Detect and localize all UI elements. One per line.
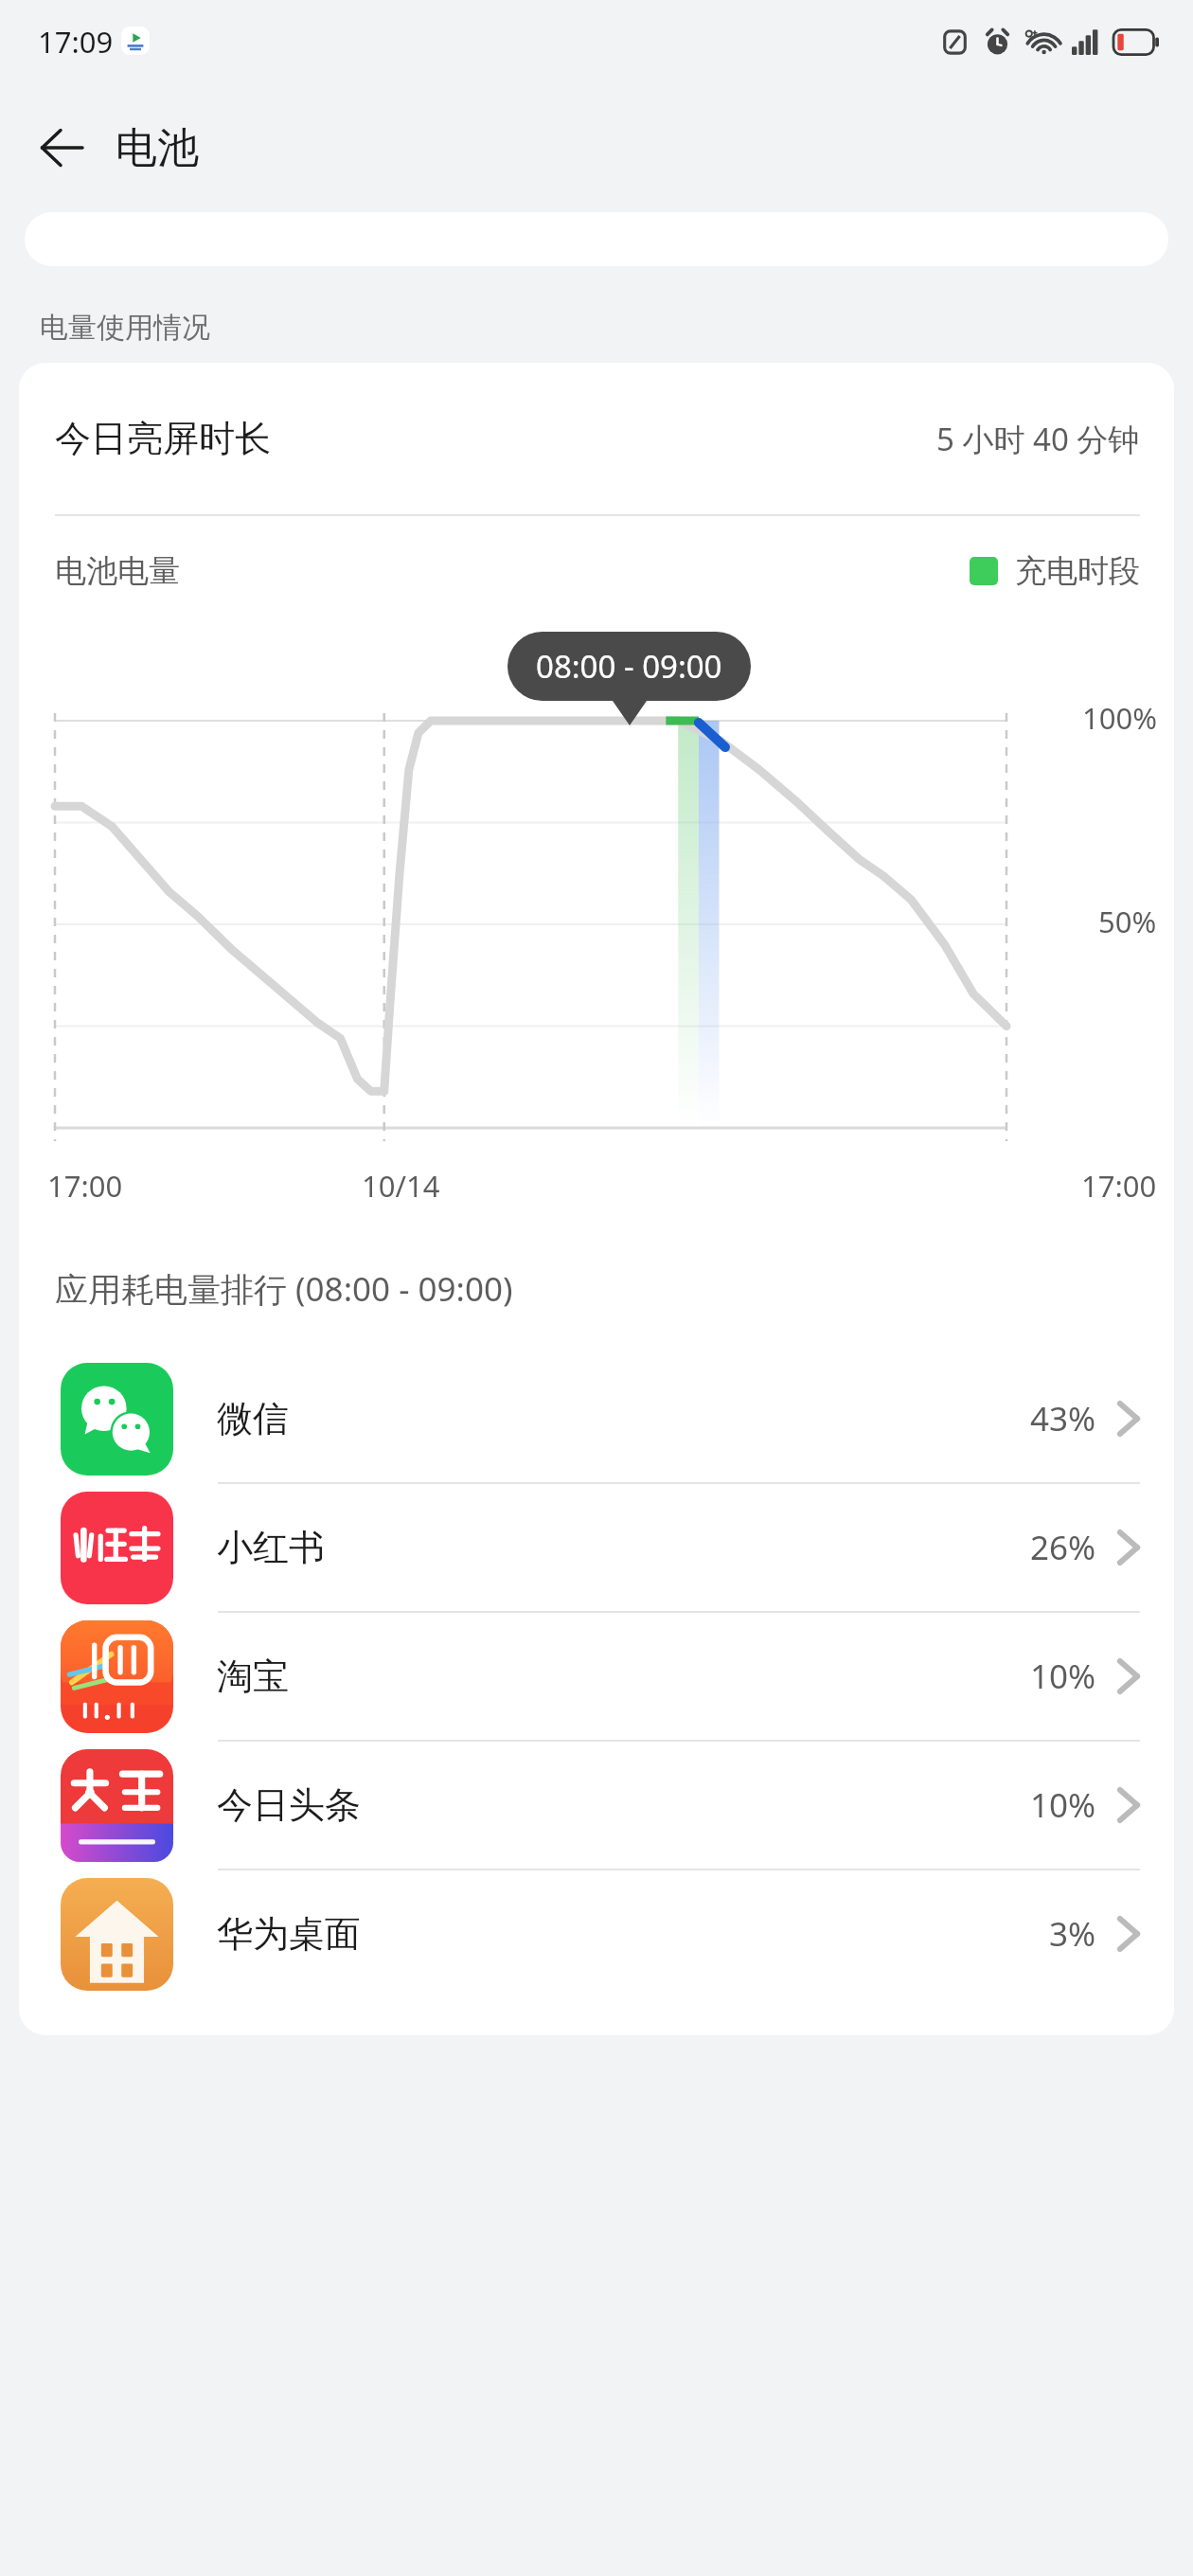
- staticText: 17:00: [47, 1166, 123, 1206]
- staticText: 17:09: [38, 22, 114, 62]
- staticText: 10%: [1030, 1782, 1096, 1828]
- staticText: 26%: [1030, 1525, 1096, 1570]
- staticText: 充电时段: [1015, 551, 1140, 591]
- staticText: 应用耗电量排行 (08:00 - 09:00): [55, 1266, 513, 1312]
- button[interactable]: 08:00 - 09:00: [536, 645, 722, 688]
- staticText: 10%: [1030, 1654, 1096, 1699]
- staticText: 小红书: [217, 1525, 1030, 1570]
- staticText: 100%: [1082, 698, 1157, 738]
- staticText: 10/14: [362, 1166, 440, 1206]
- staticText: 50%: [1098, 902, 1157, 941]
- button[interactable]: 微信: [19, 1355, 1174, 1484]
- staticText: 淘宝: [217, 1654, 1030, 1699]
- staticText: 电池电量: [55, 551, 180, 591]
- button[interactable]: 今日头条: [19, 1742, 1174, 1870]
- staticText: 5 小时 40 分钟: [936, 418, 1140, 460]
- staticText: 今日头条: [217, 1782, 1030, 1828]
- button[interactable]: 今日亮屏时长: [19, 363, 1174, 514]
- staticText: 今日亮屏时长: [55, 416, 271, 461]
- staticText: 43%: [1030, 1396, 1096, 1441]
- staticText: 3%: [1049, 1911, 1096, 1957]
- button[interactable]: 淘宝: [19, 1613, 1174, 1742]
- staticText: 17:00: [1081, 1166, 1157, 1206]
- button[interactable]: 返回: [23, 109, 100, 187]
- staticText: 电量使用情况: [40, 310, 210, 346]
- staticText: 微信: [217, 1396, 1030, 1441]
- staticText: 电池: [116, 122, 199, 174]
- button[interactable]: 华为桌面: [19, 1870, 1174, 1997]
- staticText: 08:00 - 09:00: [536, 645, 722, 688]
- staticText: 华为桌面: [217, 1911, 1049, 1957]
- button[interactable]: 小红书: [19, 1484, 1174, 1613]
